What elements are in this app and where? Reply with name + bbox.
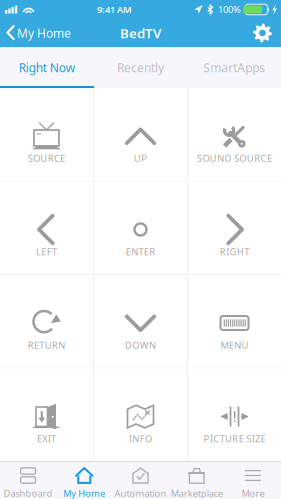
button[interactable]: SmartApps	[187, 47, 281, 88]
staticText: SOUND SOURCE	[197, 152, 272, 164]
button[interactable]: RIGHT	[188, 181, 281, 274]
staticText: SmartApps	[203, 59, 265, 75]
button[interactable]: EXIT	[0, 368, 93, 461]
button[interactable]: Marketplace	[169, 461, 225, 499]
button[interactable]: Automation	[112, 461, 169, 499]
button[interactable]: MENU	[188, 275, 281, 367]
staticText: More	[241, 487, 264, 499]
button[interactable]: UP	[94, 88, 187, 180]
button[interactable]: Dashboard	[0, 461, 56, 499]
staticText: UP	[134, 152, 147, 164]
button[interactable]: Right Now	[0, 47, 94, 88]
button[interactable]: DOWN	[94, 275, 187, 367]
staticText: INFO	[129, 432, 152, 445]
staticText: ENTER	[126, 245, 155, 258]
button[interactable]: More	[225, 461, 281, 499]
staticText: Dashboard	[4, 487, 53, 499]
button[interactable]: My Home	[0, 20, 79, 46]
staticText: My Home	[63, 487, 105, 499]
button[interactable]: LEFT	[0, 181, 93, 274]
button[interactable]: PICTURE SIZE	[188, 368, 281, 461]
staticText: My Home	[17, 25, 71, 41]
staticText: SOURCE	[28, 152, 65, 164]
button[interactable]: RETURN	[0, 275, 93, 367]
staticText: BedTV	[120, 24, 161, 42]
staticText: RIGHT	[220, 245, 249, 258]
staticText: EXIT	[37, 432, 56, 445]
button[interactable]: My Home	[56, 461, 112, 499]
button[interactable]: SOUND SOURCE	[188, 88, 281, 180]
button[interactable]: Recently	[94, 47, 187, 88]
button[interactable]: ENTER	[94, 181, 187, 274]
staticText: MENU	[220, 339, 248, 351]
button[interactable]: Settings	[244, 18, 281, 47]
button[interactable]: SOURCE	[0, 88, 93, 180]
staticText: DOWN	[125, 339, 156, 351]
staticText: 100%	[218, 3, 241, 16]
button[interactable]: INFO	[94, 368, 187, 461]
staticText: 9:41 AM	[97, 3, 132, 16]
staticText: Marketplace	[171, 487, 223, 499]
staticText: Recently	[117, 59, 164, 75]
staticText: RETURN	[28, 339, 65, 351]
staticText: Automation	[114, 487, 166, 499]
staticText: LEFT	[36, 245, 57, 258]
staticText: Right Now	[19, 59, 75, 75]
staticText: PICTURE SIZE	[204, 432, 265, 445]
